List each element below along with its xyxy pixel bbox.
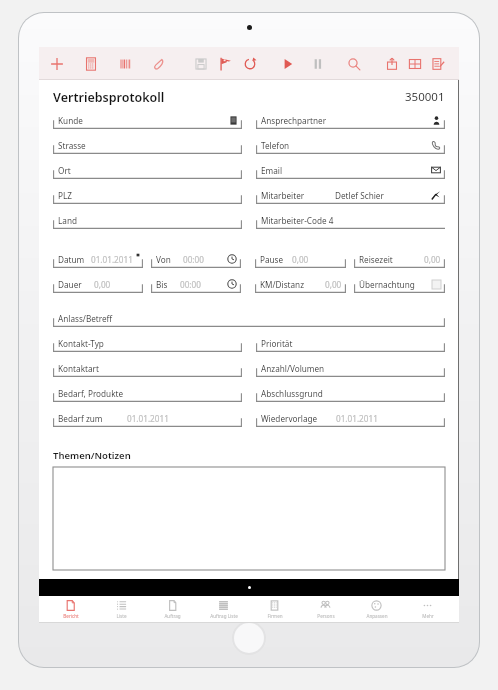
- staticText: Dauer: [58, 279, 82, 290]
- button[interactable]: Abschlussgrund: [256, 384, 445, 402]
- staticText: 00:00: [180, 279, 201, 290]
- staticText: Mitarbeiter-Code 4: [261, 215, 334, 226]
- button[interactable]: Persons: [300, 596, 351, 623]
- button[interactable]: Barcode: [115, 54, 135, 74]
- staticText: 0,00: [424, 254, 441, 265]
- button[interactable]: Firmen: [249, 596, 300, 623]
- staticText: Kontakt-Typ: [58, 338, 104, 349]
- staticText: 01.01.2011: [127, 413, 169, 424]
- button[interactable]: Telefon: [256, 136, 445, 154]
- staticText: Reisezeit: [359, 254, 393, 265]
- staticText: Land: [58, 215, 77, 226]
- button[interactable]: [53, 467, 445, 570]
- button[interactable]: Play: [278, 54, 298, 74]
- button[interactable]: Pause: [255, 250, 346, 268]
- staticText: Anpassen: [366, 613, 388, 619]
- staticText: 01.01.2011: [91, 254, 133, 265]
- staticText: Auftrag: [164, 613, 181, 619]
- staticText: Mehr: [422, 613, 434, 619]
- staticText: Abschlussgrund: [261, 388, 323, 399]
- staticText: PLZ: [58, 190, 72, 201]
- staticText: Bedarf zum: [58, 413, 103, 424]
- staticText: Ort: [58, 165, 71, 176]
- staticText: Auftrag Liste: [210, 613, 238, 619]
- button[interactable]: Home: [234, 623, 264, 653]
- staticText: Themen/Notizen: [53, 449, 131, 462]
- staticText: 0,00: [292, 254, 309, 265]
- button[interactable]: Bedarf, Produkte: [53, 384, 242, 402]
- button[interactable]: Add: [47, 54, 67, 74]
- staticText: Vertriebsprotokoll: [53, 89, 165, 106]
- staticText: Kontaktart: [58, 363, 99, 374]
- staticText: Telefon: [261, 140, 290, 151]
- staticText: Anlass/Betreff: [58, 313, 113, 324]
- staticText: 350001: [405, 89, 445, 105]
- staticText: Wiedervorlage: [261, 413, 318, 424]
- button[interactable]: Ort: [53, 161, 242, 179]
- staticText: KM/Distanz: [260, 279, 305, 290]
- button[interactable]: Liste: [96, 596, 147, 623]
- staticText: Liste: [116, 613, 127, 619]
- staticText: Mitarbeiter: [261, 190, 305, 201]
- button[interactable]: Calculator: [81, 54, 101, 74]
- button[interactable]: Mehr: [402, 596, 453, 623]
- staticText: Von: [156, 254, 171, 265]
- staticText: Anzahl/Volumen: [261, 363, 325, 374]
- button[interactable]: Übernachtung: [354, 275, 445, 293]
- staticText: 00:00: [183, 254, 204, 265]
- staticText: 0,00: [94, 279, 111, 290]
- staticText: Strasse: [58, 140, 86, 151]
- staticText: 0,00: [325, 279, 342, 290]
- staticText: Kunde: [58, 115, 83, 126]
- button[interactable]: Kontaktart: [53, 359, 242, 377]
- button[interactable]: Attach: [149, 54, 169, 74]
- button[interactable]: Mitarbeiter-Code 4: [256, 211, 445, 229]
- button[interactable]: Mitarbeiter: [256, 186, 445, 204]
- button[interactable]: Bedarf zum: [53, 409, 242, 427]
- staticText: Priorität: [261, 338, 293, 349]
- staticText: Persons: [317, 613, 335, 619]
- button[interactable]: Refresh: [240, 54, 260, 74]
- button[interactable]: Strasse: [53, 136, 242, 154]
- button[interactable]: Notes: [428, 54, 448, 74]
- button[interactable]: Datum: [53, 250, 143, 268]
- button[interactable]: Save: [191, 54, 211, 74]
- button[interactable]: Pause: [308, 54, 328, 74]
- staticText: Detlef Schier: [335, 190, 384, 201]
- button[interactable]: Anzahl/Volumen: [256, 359, 445, 377]
- button[interactable]: KM/Distanz: [255, 275, 346, 293]
- button[interactable]: PLZ: [53, 186, 242, 204]
- button[interactable]: Kontakt-Typ: [53, 334, 242, 352]
- staticText: Bericht: [63, 613, 79, 619]
- button[interactable]: Email: [256, 161, 445, 179]
- staticText: Bis: [156, 279, 168, 290]
- button[interactable]: Kunde: [53, 111, 242, 129]
- button[interactable]: Von: [151, 250, 241, 268]
- staticText: Ansprechpartner: [261, 115, 327, 126]
- staticText: Übernachtung: [359, 279, 415, 290]
- staticText: Email: [261, 165, 283, 176]
- button[interactable]: Bis: [151, 275, 241, 293]
- button[interactable]: Bericht: [45, 596, 96, 623]
- button[interactable]: Priorität: [256, 334, 445, 352]
- button[interactable]: Flag: [215, 54, 235, 74]
- button[interactable]: Auftrag: [147, 596, 198, 623]
- button[interactable]: Reisezeit: [354, 250, 445, 268]
- staticText: Firmen: [267, 613, 283, 619]
- staticText: 01.01.2011: [336, 413, 378, 424]
- button[interactable]: Wiedervorlage: [256, 409, 445, 427]
- button[interactable]: Gallery: [405, 54, 425, 74]
- button[interactable]: Anpassen: [351, 596, 402, 623]
- button[interactable]: Search: [344, 54, 364, 74]
- button[interactable]: Auftrag Liste: [198, 596, 249, 623]
- staticText: Bedarf, Produkte: [58, 388, 124, 399]
- staticText: Datum: [58, 254, 85, 265]
- button[interactable]: Share: [382, 54, 402, 74]
- button[interactable]: Ansprechpartner: [256, 111, 445, 129]
- button[interactable]: Dauer: [53, 275, 143, 293]
- button[interactable]: Anlass/Betreff: [53, 309, 445, 327]
- staticText: Pause: [260, 254, 284, 265]
- button[interactable]: Land: [53, 211, 242, 229]
